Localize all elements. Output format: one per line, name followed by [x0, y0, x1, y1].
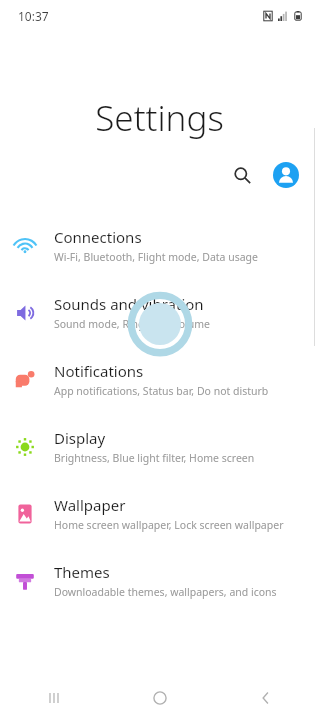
staticText: Connections [54, 227, 142, 247]
staticText: Wallpaper [54, 495, 126, 515]
staticText: Home screen wallpaper, Lock screen wallp… [54, 518, 284, 532]
staticText: Settings [0, 94, 319, 142]
button[interactable]: Recents [0, 676, 107, 720]
button[interactable]: Sounds and vibration [0, 279, 319, 346]
button[interactable]: Back [213, 676, 319, 720]
button[interactable]: Home [107, 676, 213, 720]
staticText: Sounds and vibration [54, 294, 204, 314]
button[interactable]: Themes [0, 547, 319, 614]
staticText: Wi-Fi, Bluetooth, Flight mode, Data usag… [54, 250, 259, 264]
button[interactable]: Notifications [0, 346, 319, 413]
staticText: Themes [54, 562, 110, 582]
staticText: Brightness, Blue light filter, Home scre… [54, 451, 255, 465]
staticText: Display [54, 428, 106, 448]
button[interactable]: Wallpaper [0, 480, 319, 547]
staticText: Sound mode, Ringtone, Volume [54, 317, 211, 331]
button[interactable]: Search [223, 156, 261, 194]
staticText: Notifications [54, 361, 144, 381]
staticText: Downloadable themes, wallpapers, and ico… [54, 585, 277, 599]
staticText: 10:37 [18, 8, 49, 24]
staticText: App notifications, Status bar, Do not di… [54, 384, 269, 398]
button[interactable]: Account [267, 156, 305, 194]
button[interactable]: Connections [0, 212, 319, 279]
button[interactable]: Display [0, 413, 319, 480]
